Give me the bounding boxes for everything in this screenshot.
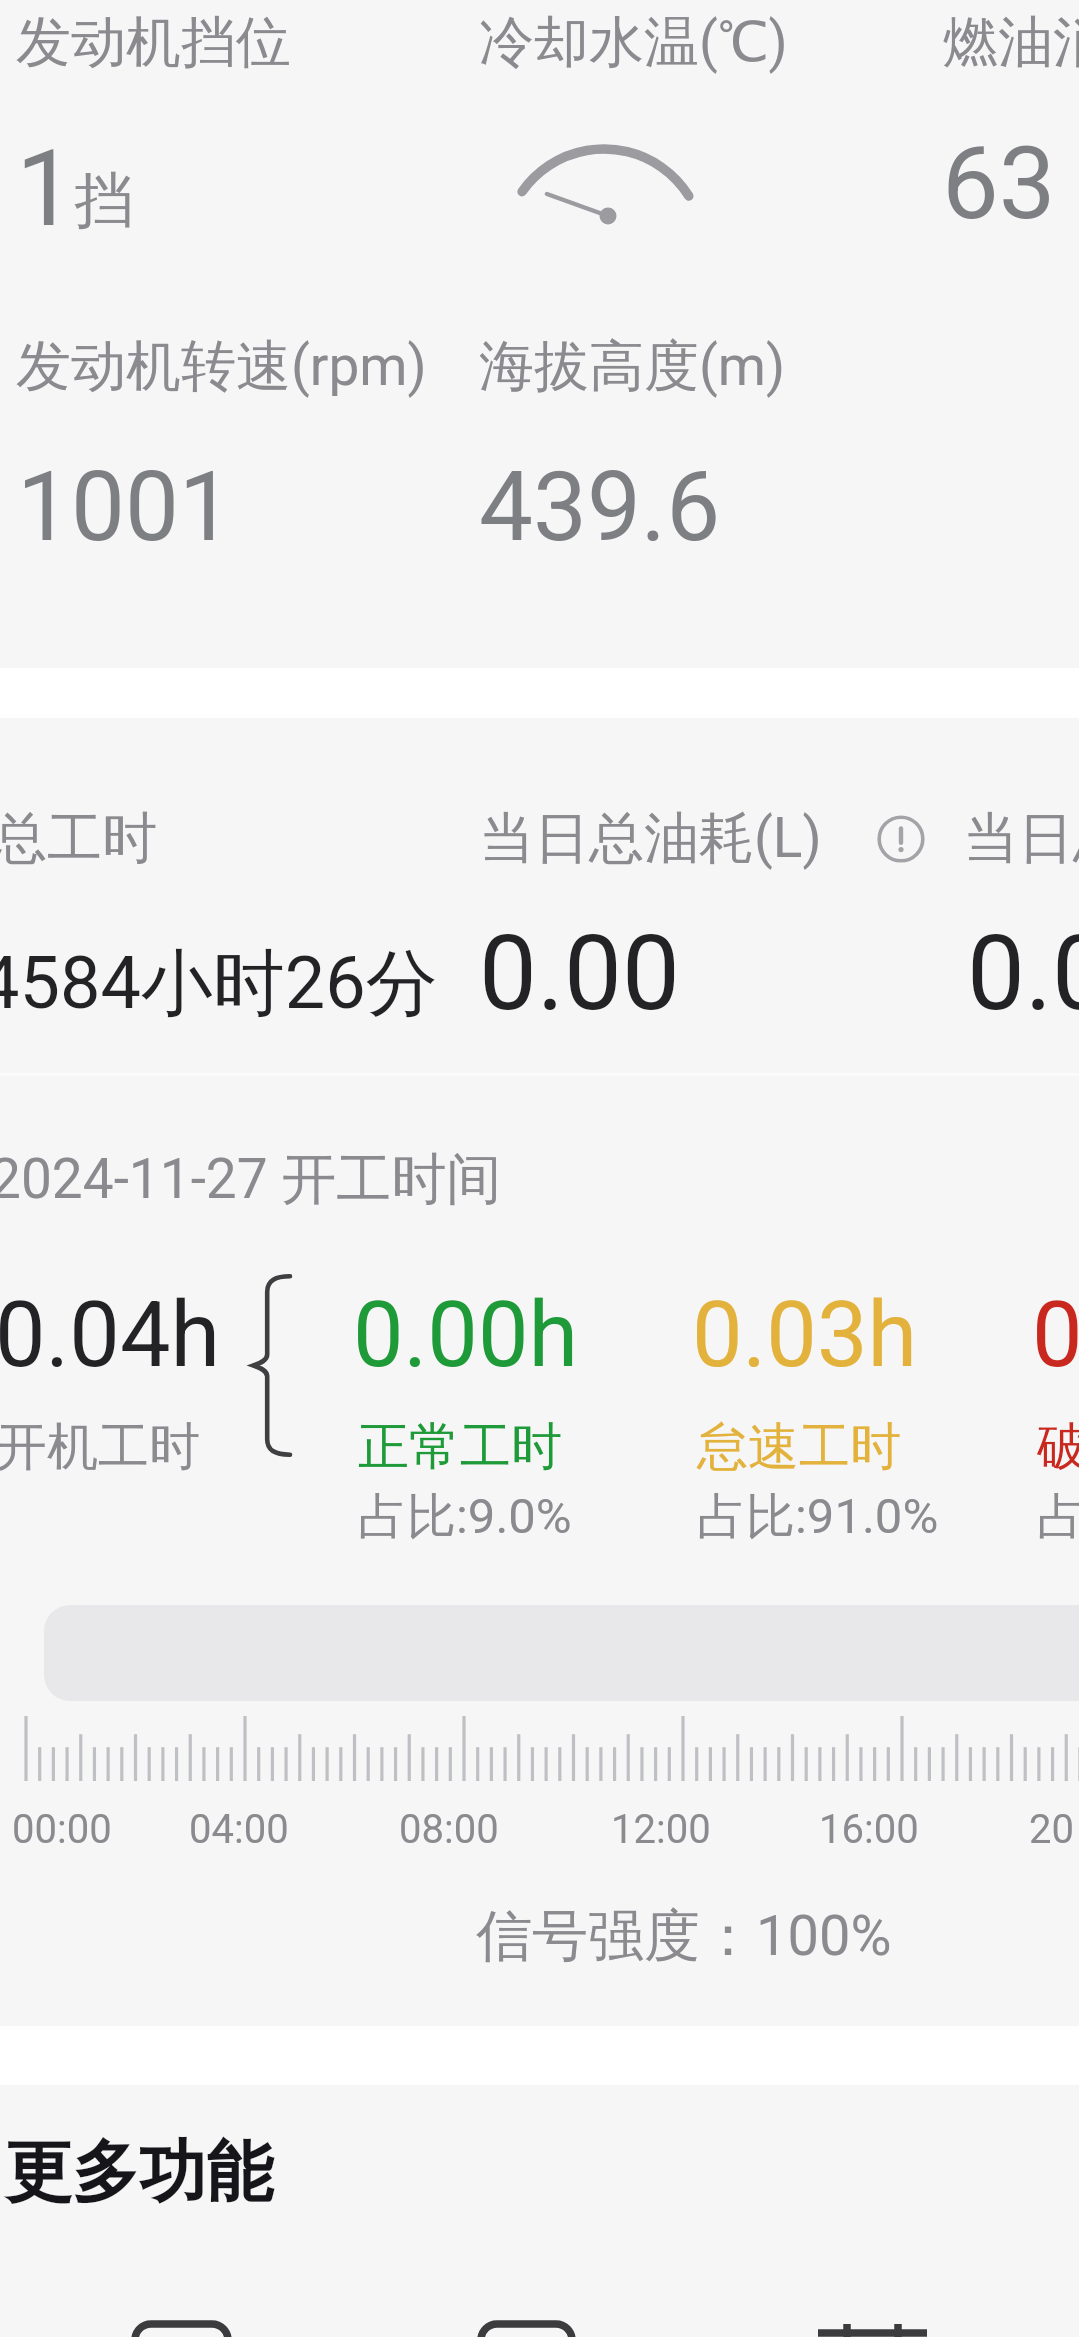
button[interactable]: 发动机挡位 1挡 bbox=[0, 0, 462, 300]
staticText: 439.6 bbox=[479, 451, 721, 564]
button[interactable]: 总工时 4584小时26分 bbox=[0, 775, 462, 1065]
staticText: 破 bbox=[1037, 1415, 1079, 1479]
staticText: 04:00 bbox=[189, 1806, 289, 1853]
staticText: 占比:91.0% bbox=[697, 1486, 939, 1548]
button[interactable]: 怠速工时 0.03h 占比:91.0% bbox=[684, 1285, 1014, 1545]
staticText: 0.04h bbox=[0, 1283, 221, 1388]
button[interactable]: 当日总里程 bbox=[942, 775, 1079, 1065]
staticText: 0.03h bbox=[692, 1283, 918, 1388]
staticText: 1001 bbox=[17, 451, 233, 564]
staticText: 冷却水温(℃) bbox=[479, 8, 788, 77]
staticText: 2024-11-27 开工时间 bbox=[0, 1145, 502, 1214]
staticText: 16:00 bbox=[819, 1806, 919, 1853]
staticText: 挡 bbox=[74, 163, 134, 239]
staticText: 08:00 bbox=[399, 1806, 499, 1853]
staticText: 信号强度：100% bbox=[476, 1901, 892, 1972]
staticText: 当日总油耗(L) bbox=[479, 804, 822, 873]
staticText: 发动机转速(rpm) bbox=[16, 332, 427, 401]
staticText: 发动机挡位 bbox=[16, 8, 291, 77]
staticText: 燃油消 bbox=[943, 8, 1079, 77]
button[interactable]: 冷却水温 bbox=[462, 0, 924, 300]
staticText: 0.00h bbox=[353, 1283, 579, 1388]
staticText: 开机工时 bbox=[0, 1415, 200, 1479]
button[interactable]: Function two bbox=[481, 2324, 572, 2337]
staticText: 00:00 bbox=[12, 1806, 112, 1853]
button[interactable]: Function one bbox=[135, 2324, 228, 2337]
staticText: 0 bbox=[1032, 1283, 1079, 1388]
staticText: 占 bbox=[1037, 1486, 1079, 1548]
button[interactable]: 破 0 占 bbox=[1024, 1285, 1079, 1545]
staticText: 12:00 bbox=[611, 1806, 711, 1853]
staticText: 63 bbox=[942, 124, 1056, 242]
button[interactable]: 当日总油耗 0.00 升 bbox=[462, 775, 942, 1065]
staticText: 正常工时 bbox=[358, 1415, 562, 1479]
button[interactable]: 海拔高度 439.6 m bbox=[462, 320, 924, 620]
staticText: 海拔高度(m) bbox=[479, 332, 786, 401]
staticText: 1 bbox=[16, 128, 76, 251]
staticText: 怠速工时 bbox=[697, 1415, 901, 1479]
staticText: 4584小时26分 bbox=[0, 939, 438, 1030]
staticText: 更多功能 bbox=[5, 2130, 273, 2214]
button[interactable]: 正常工时 0.00h 占比:9.0% bbox=[345, 1285, 675, 1545]
staticText: 总工时 bbox=[0, 804, 157, 873]
staticText: 当日总 bbox=[963, 804, 1079, 873]
button[interactable]: 发动机转速 1001 rpm bbox=[0, 320, 462, 620]
staticText: 20 bbox=[1029, 1806, 1074, 1853]
staticText: 占比:9.0% bbox=[358, 1486, 572, 1548]
staticText: 0.00 bbox=[479, 913, 680, 1034]
staticText: 0.0 bbox=[967, 913, 1079, 1034]
button[interactable]: 燃油消耗 63 bbox=[924, 0, 1079, 300]
button[interactable]: Function three bbox=[818, 2322, 927, 2337]
button[interactable]: More information bbox=[877, 815, 925, 863]
